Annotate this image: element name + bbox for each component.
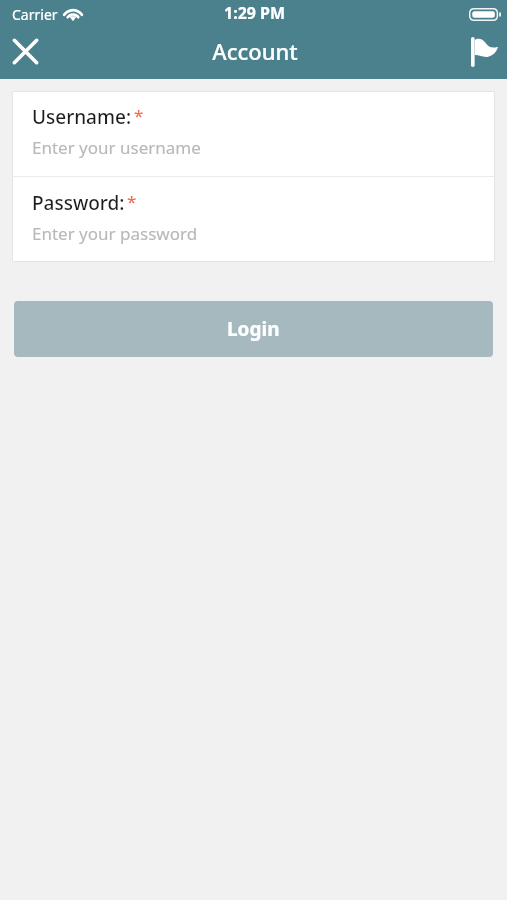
staticText: 1:29 PM [224,2,286,24]
button[interactable]: Login [14,301,493,357]
staticText: Enter your password [32,222,198,245]
staticText: Account [212,36,298,66]
staticText: Login [227,316,280,342]
button[interactable]: Username: [12,91,495,176]
staticText: Enter your username [32,136,201,159]
staticText: * [127,190,137,213]
staticText: * [134,104,144,127]
button[interactable]: Close [0,29,50,79]
staticText: Password: [32,190,125,216]
button[interactable]: Flag [457,29,507,79]
staticText: Username: [32,104,132,130]
staticText: Carrier [12,5,58,24]
button[interactable]: Password: [12,177,495,262]
